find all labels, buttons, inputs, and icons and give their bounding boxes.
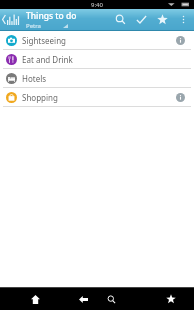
button[interactable]: Search (102, 290, 120, 308)
button[interactable]: More options (173, 9, 194, 30)
button[interactable]: Up (0, 9, 22, 30)
button[interactable]: Back (74, 290, 92, 308)
button[interactable]: Info (172, 32, 188, 48)
button[interactable]: Shopping (0, 88, 194, 107)
button[interactable]: Search (110, 9, 131, 30)
staticText: Shopping (22, 92, 58, 103)
staticText: Eat and Drink (22, 54, 73, 65)
staticText: Sightseeing (22, 35, 66, 46)
staticText: Petra (26, 22, 41, 30)
button[interactable]: Favorites (162, 290, 180, 308)
button[interactable]: Info (172, 89, 188, 105)
button[interactable]: Eat and Drink (0, 50, 194, 69)
button[interactable]: Check in (131, 9, 152, 30)
button[interactable]: Favorite (152, 9, 173, 30)
staticText: Things to do (26, 10, 77, 22)
button[interactable]: Home (26, 290, 44, 308)
button[interactable]: Hotels (0, 69, 194, 88)
staticText: 9:40 (91, 1, 103, 9)
staticText: Hotels (22, 73, 47, 84)
button[interactable]: Sightseeing (0, 31, 194, 50)
